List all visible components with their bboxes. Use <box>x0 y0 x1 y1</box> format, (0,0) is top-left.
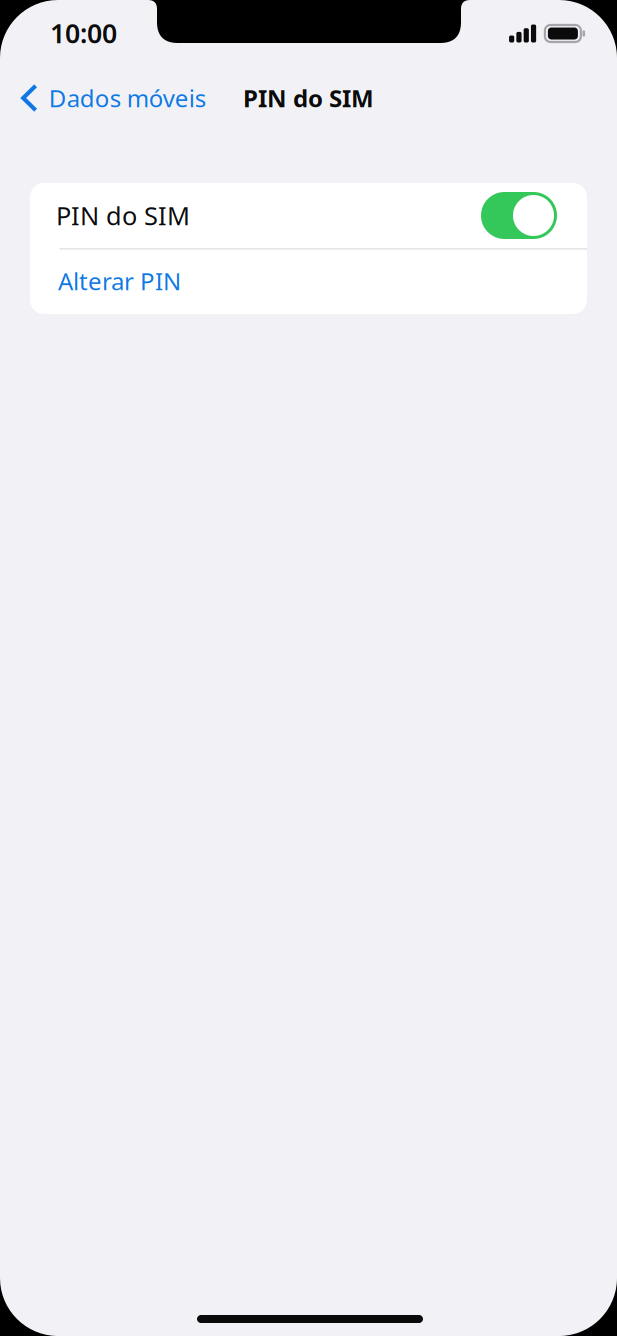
staticText: PIN do SIM <box>243 82 374 114</box>
staticText: Alterar PIN <box>58 265 181 297</box>
button[interactable]: Voltar para Dados móveis <box>21 75 236 121</box>
staticText: Dados móveis <box>49 82 206 114</box>
staticText: PIN do SIM <box>56 199 190 232</box>
button[interactable]: Alterar PIN <box>30 250 587 312</box>
staticText: 10:00 <box>50 15 117 51</box>
button[interactable]: PIN do SIM <box>30 183 587 248</box>
